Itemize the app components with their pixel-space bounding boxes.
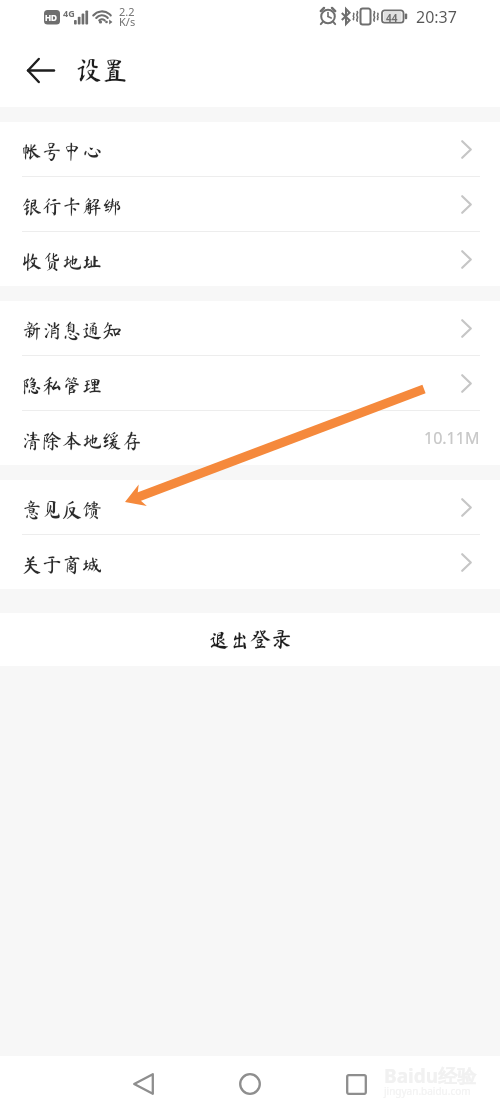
button[interactable]: 意见反馈 — [0, 480, 500, 534]
staticText: 清除本地缓存 — [22, 430, 142, 450]
button[interactable]: Recent apps — [332, 1060, 380, 1108]
button[interactable]: Back — [119, 1060, 167, 1108]
staticText: K/s — [119, 14, 136, 29]
staticText: 关于商城 — [22, 554, 102, 574]
staticText: jingyan.baidu.com — [384, 1084, 471, 1098]
button[interactable]: 新消息通知 — [0, 301, 500, 355]
staticText: 设置 — [76, 57, 129, 83]
button[interactable]: 隐私管理 — [0, 356, 500, 410]
staticText: 帐号中心 — [22, 141, 102, 161]
staticText: 20:37 — [416, 6, 457, 28]
staticText: Baidu经验 — [384, 1063, 477, 1089]
staticText: 隐私管理 — [22, 375, 102, 395]
button[interactable]: 帐号中心 — [0, 122, 500, 176]
staticText: 收货地址 — [22, 251, 102, 271]
button[interactable]: 关于商城 — [0, 535, 500, 589]
staticText: 银行卡解绑 — [22, 196, 122, 216]
staticText: 10.11M — [424, 427, 480, 449]
button[interactable]: Home — [226, 1060, 274, 1108]
staticText: 4G — [63, 7, 75, 19]
staticText: 2.2 — [119, 4, 135, 19]
staticText: 意见反馈 — [22, 499, 102, 519]
staticText: HD — [45, 12, 57, 23]
staticText: 44 — [386, 11, 398, 25]
button[interactable]: 收货地址 — [0, 232, 500, 286]
staticText: 新消息通知 — [22, 320, 122, 340]
button[interactable]: 退出登录 — [0, 613, 500, 666]
button[interactable]: 银行卡解绑 — [0, 177, 500, 231]
button[interactable]: Back — [22, 52, 58, 88]
staticText: 退出登录 — [208, 629, 292, 650]
button[interactable]: 清除本地缓存 — [0, 411, 500, 465]
